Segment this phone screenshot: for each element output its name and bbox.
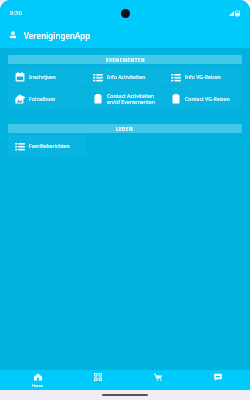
button[interactable]: Messages (188, 370, 248, 390)
staticText: Familieberichten (29, 142, 70, 149)
staticText: 9:30 (10, 9, 22, 17)
staticText: EVENEMENTEN (106, 57, 145, 63)
button[interactable]: Home (8, 370, 68, 390)
staticText: Inschrijven (29, 73, 56, 80)
button[interactable]: Info VG-Reizen (164, 66, 242, 87)
staticText: LEDEN (116, 126, 134, 132)
button[interactable]: Contact Activiteiten en/of Evenementen (86, 88, 164, 109)
button[interactable]: Shop (128, 370, 188, 390)
staticText: Home (32, 383, 44, 388)
staticText: Info Activiteiten (107, 73, 146, 80)
staticText: Info VG-Reizen (185, 73, 221, 80)
button[interactable]: VerenigingenApp (0, 22, 250, 48)
button[interactable]: Fotoalbum (8, 88, 86, 109)
staticText: VerenigingenApp (24, 30, 91, 41)
staticText: Fotoalbum (29, 95, 56, 102)
button[interactable]: Info Activiteiten (86, 66, 164, 87)
staticText: Contact Activiteiten en/of Evenementen (107, 92, 155, 105)
button[interactable]: Inschrijven (8, 66, 86, 87)
button[interactable]: Contact VG-Reizen (164, 88, 242, 109)
button[interactable]: Dashboard (68, 370, 128, 390)
staticText: Contact VG-Reizen (185, 95, 230, 102)
button[interactable]: Familieberichten (8, 135, 86, 156)
